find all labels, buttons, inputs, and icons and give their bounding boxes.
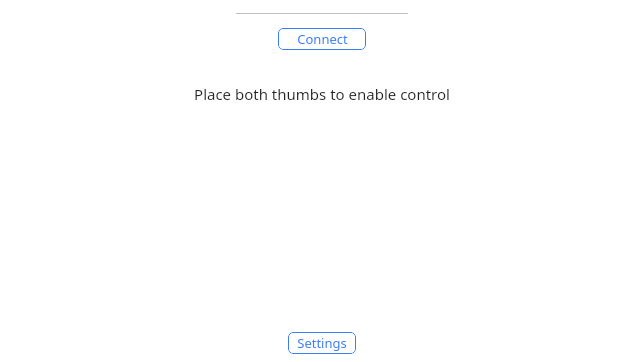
staticText: Settings bbox=[297, 334, 347, 352]
button[interactable]: Connect bbox=[278, 28, 366, 50]
button[interactable]: Settings bbox=[288, 332, 356, 354]
staticText: Connect bbox=[297, 30, 348, 48]
staticText: Place both thumbs to enable control bbox=[194, 84, 450, 104]
